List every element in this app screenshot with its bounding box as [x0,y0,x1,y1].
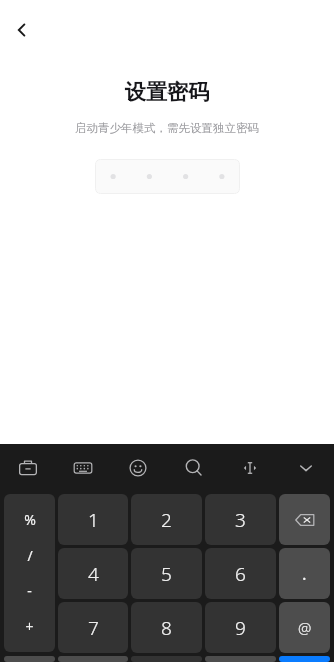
button[interactable]: 8 [131,602,202,653]
staticText: 8 [161,615,172,641]
staticText: 1 [88,507,99,533]
button[interactable]: 3 [205,494,276,545]
button[interactable]: @ [279,602,330,653]
staticText: 9 [235,615,246,641]
staticText: % [24,510,36,529]
staticText: + [25,617,34,636]
staticText: . [302,562,307,585]
staticText: @ [298,618,312,638]
staticText: 3 [235,507,246,533]
staticText: 设置密码 [0,79,334,105]
button[interactable]: . [279,548,330,599]
button[interactable]: Password input [95,159,240,194]
button[interactable]: Backspace [279,494,330,545]
button[interactable]: 2 [131,494,202,545]
staticText: 5 [161,561,172,587]
button[interactable]: 1 [58,494,128,545]
button[interactable]: Keyboard [55,444,110,491]
staticText: / [27,546,33,565]
button[interactable]: Emoji [110,444,166,491]
button[interactable]: Back [0,8,44,52]
staticText: 6 [235,561,246,587]
button[interactable]: Move cursor [222,444,278,491]
staticText: 7 [88,615,99,641]
button[interactable]: 5 [131,548,202,599]
button[interactable]: 6 [205,548,276,599]
button[interactable]: Search [166,444,222,491]
staticText: - [27,581,32,600]
button[interactable]: Clipboard [0,444,55,491]
staticText: 2 [161,507,172,533]
button[interactable]: Zero [205,656,276,662]
button[interactable]: % [4,494,55,652]
button[interactable]: 4 [58,548,128,599]
button[interactable]: 9 [205,602,276,653]
button[interactable]: Hide keyboard [278,444,334,491]
staticText: 启动青少年模式，需先设置独立密码 [0,121,334,135]
button[interactable]: Done [279,656,330,662]
staticText: 4 [88,561,99,587]
button[interactable]: Language [58,656,128,662]
button[interactable]: 7 [58,602,128,653]
button[interactable]: Symbols [4,656,55,662]
